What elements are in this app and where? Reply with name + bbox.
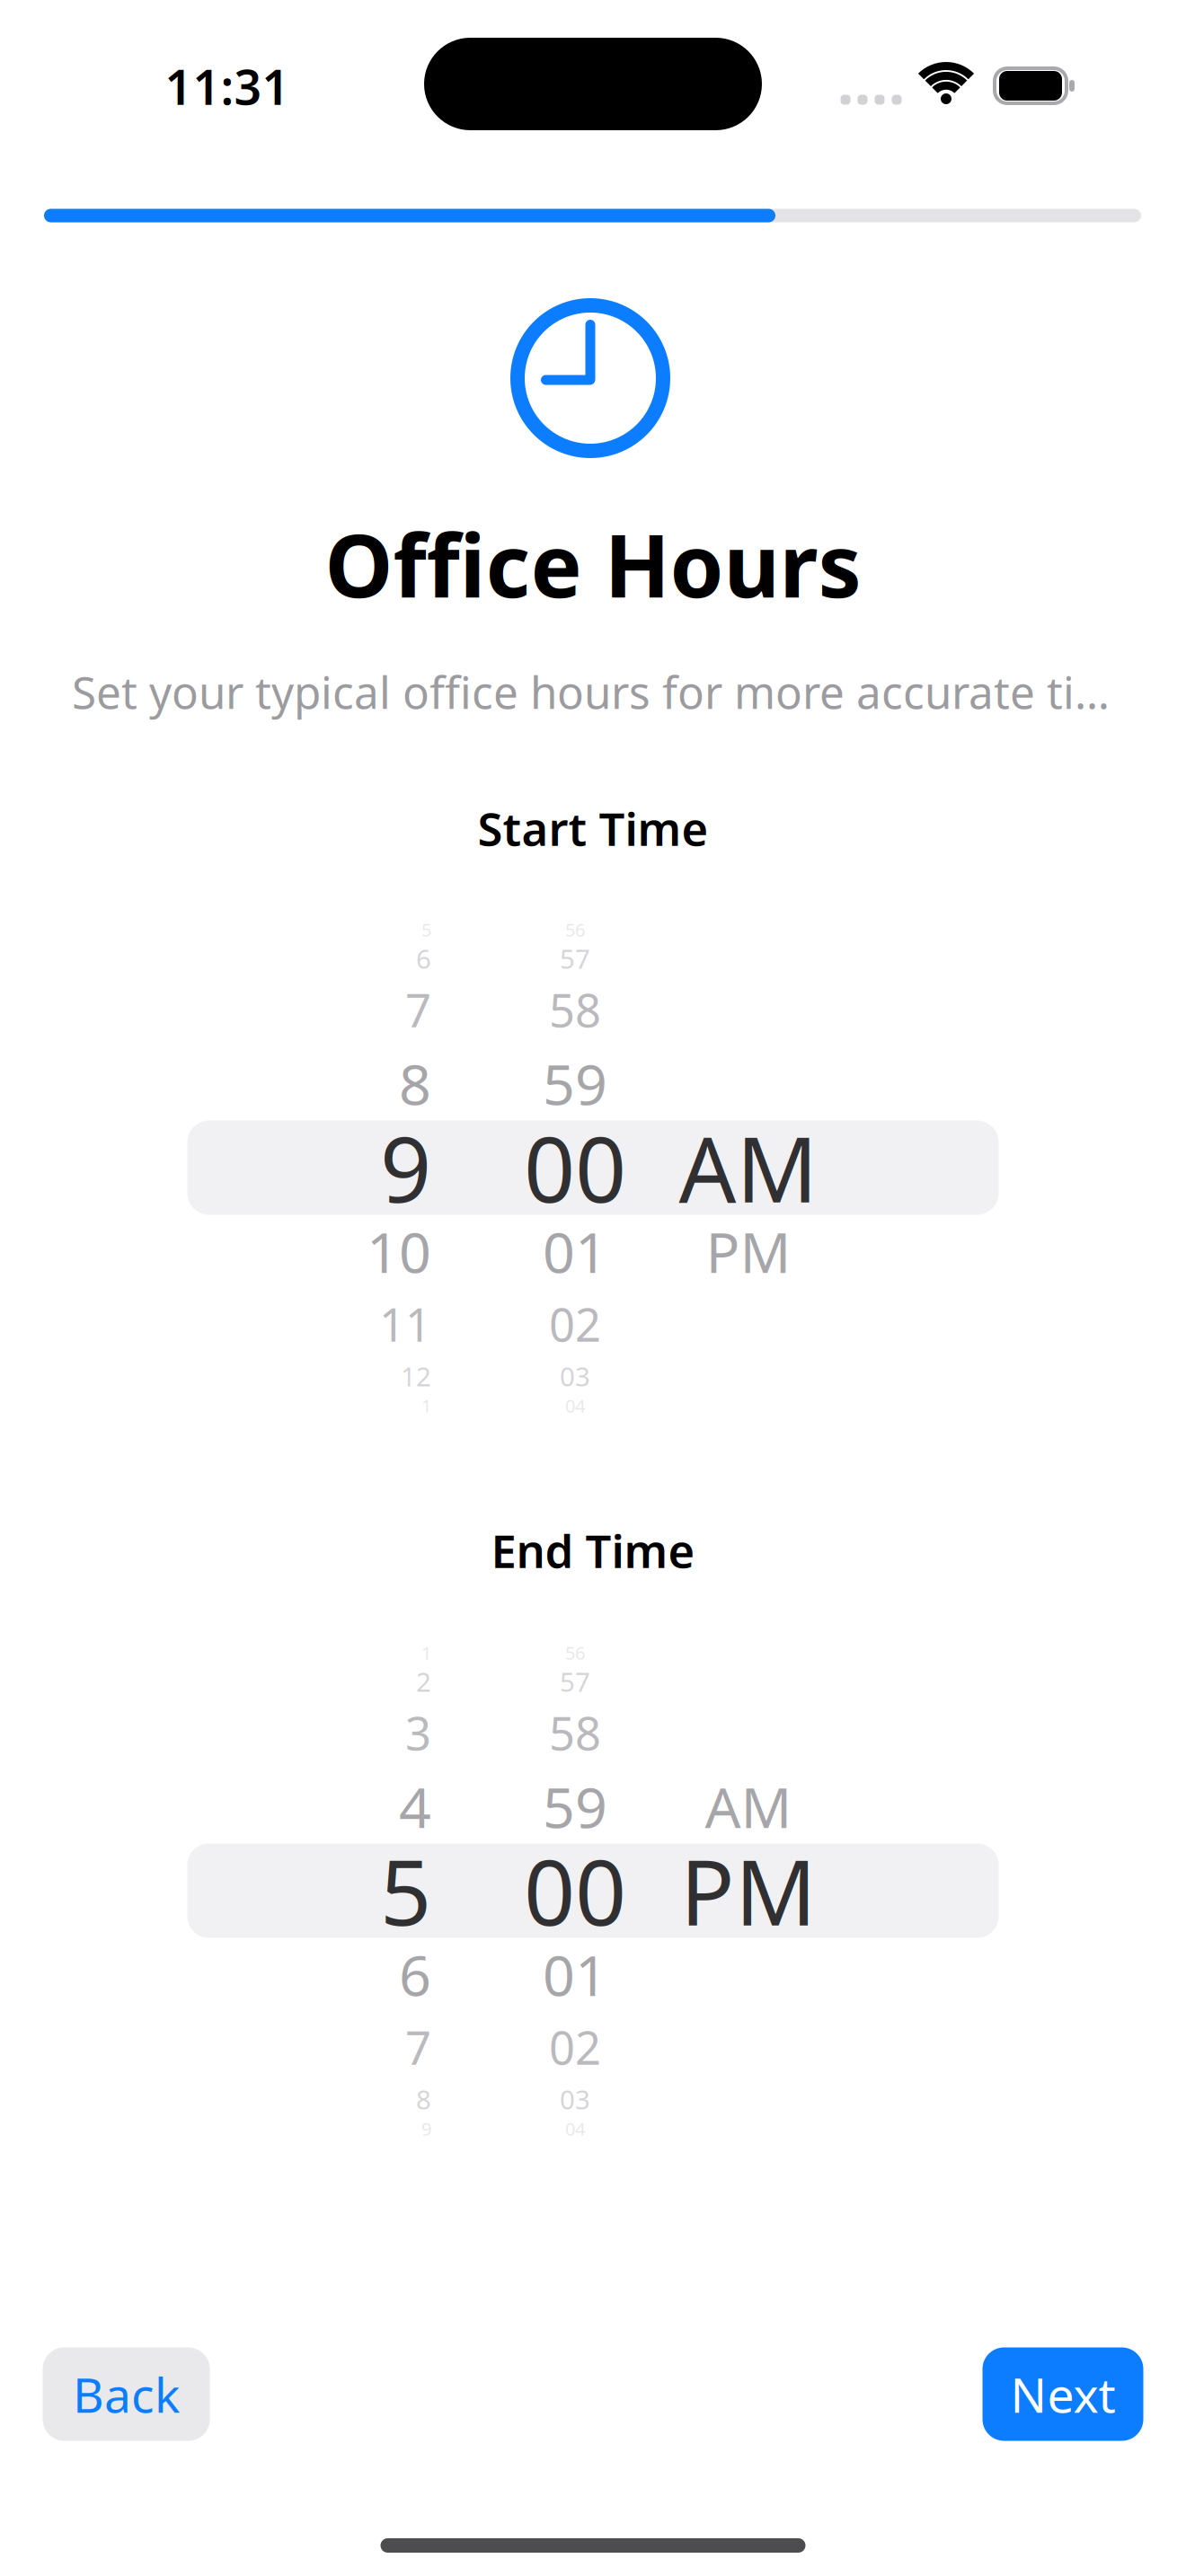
staticText: 02: [549, 2017, 601, 2077]
staticText: 56: [565, 1641, 585, 1665]
staticText: 7: [405, 979, 431, 1040]
staticText: 59: [543, 1046, 607, 1121]
staticText: 01: [543, 1214, 607, 1289]
staticText: 02: [549, 1294, 601, 1354]
staticText: 1: [421, 1394, 431, 1418]
staticText: 04: [565, 2117, 585, 2141]
staticText: Set your typical office hours for more a…: [72, 662, 1114, 721]
staticText: 3: [405, 1702, 431, 1763]
staticText: 10: [367, 1214, 431, 1289]
staticText: 2: [416, 1664, 431, 1699]
staticText: PM: [706, 1214, 791, 1289]
staticText: 03: [560, 2082, 590, 2117]
staticText: 56: [565, 918, 585, 942]
staticText: 11:31: [165, 54, 290, 118]
staticText: 58: [549, 979, 601, 1040]
staticText: 6: [416, 941, 431, 976]
staticText: 03: [560, 1359, 590, 1394]
staticText: 12: [401, 1359, 431, 1394]
staticText: 5: [421, 918, 431, 942]
staticText: 57: [560, 1664, 590, 1699]
staticText: 9: [380, 1108, 431, 1227]
staticText: 01: [543, 1937, 607, 2012]
staticText: Next: [1010, 2362, 1115, 2426]
button[interactable]: Back: [43, 2347, 210, 2441]
staticText: 57: [560, 941, 590, 976]
staticText: PM: [680, 1831, 817, 1950]
staticText: 58: [549, 1702, 601, 1763]
staticText: 00: [524, 1108, 626, 1227]
staticText: 8: [416, 2082, 431, 2117]
staticText: 4: [399, 1769, 431, 1844]
staticText: Back: [73, 2362, 180, 2426]
staticText: 7: [405, 2017, 431, 2077]
staticText: AM: [679, 1108, 818, 1227]
staticText: 00: [524, 1831, 626, 1950]
button[interactable]: Next: [982, 2347, 1143, 2441]
staticText: Office Hours: [325, 507, 861, 621]
staticText: 5: [380, 1831, 431, 1950]
staticText: 11: [379, 1294, 431, 1354]
staticText: 6: [399, 1937, 431, 2012]
staticText: 8: [399, 1046, 431, 1121]
staticText: AM: [705, 1769, 792, 1844]
staticText: 1: [421, 1641, 431, 1665]
staticText: Start Time: [478, 798, 708, 858]
staticText: 9: [421, 2117, 431, 2141]
staticText: End Time: [491, 1520, 695, 1581]
staticText: 59: [543, 1769, 607, 1844]
staticText: 04: [565, 1394, 585, 1418]
